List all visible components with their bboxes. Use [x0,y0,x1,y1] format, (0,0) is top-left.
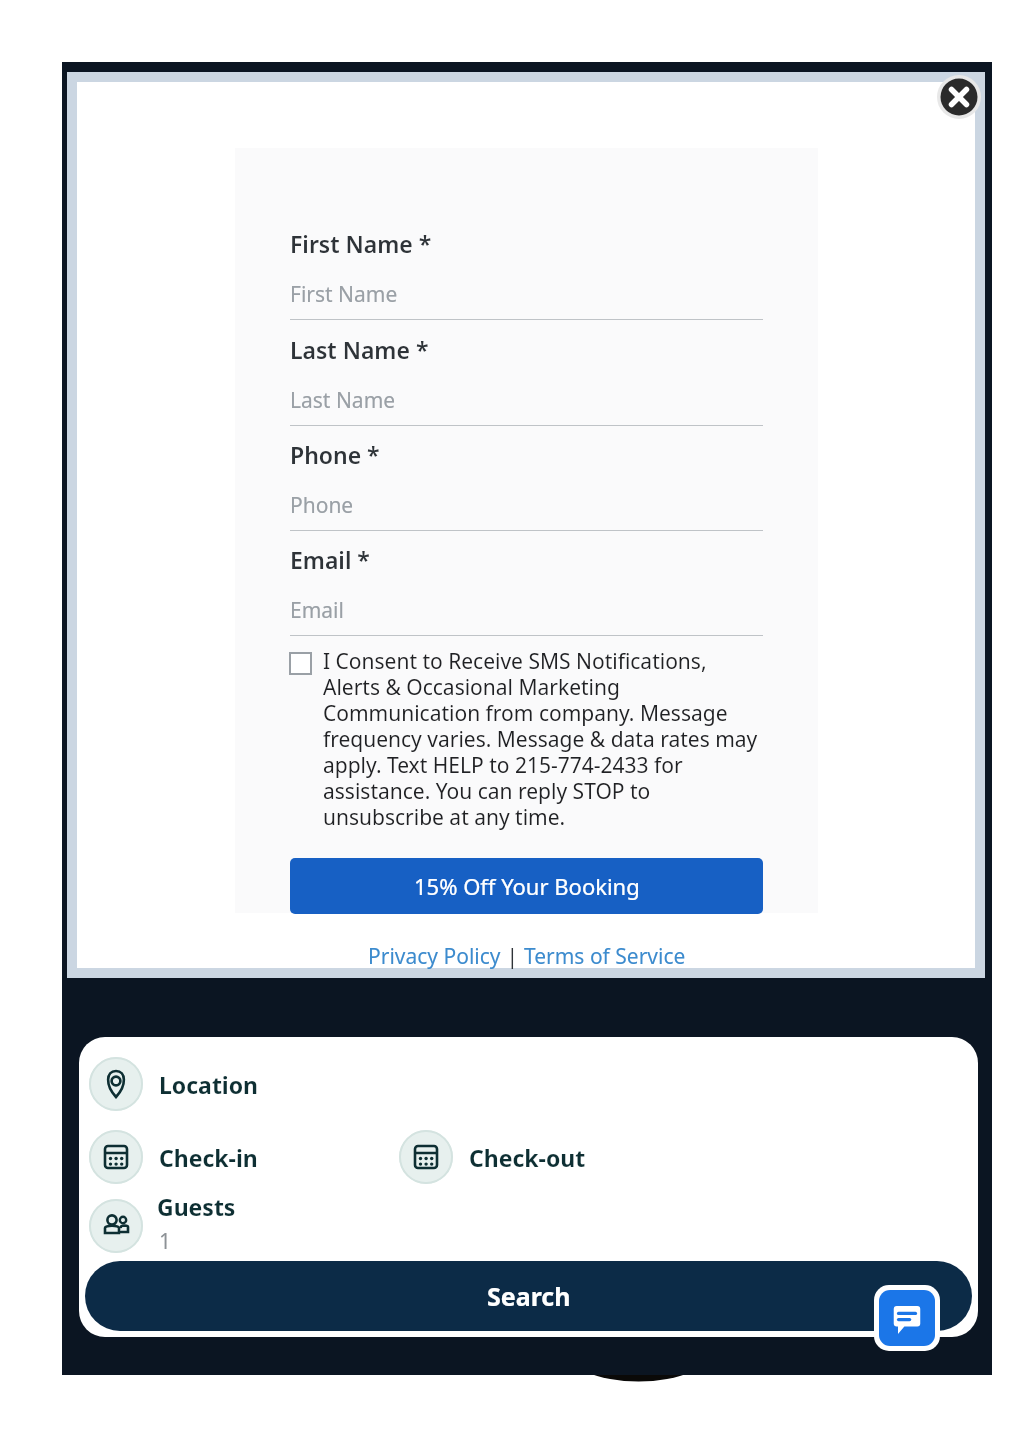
button[interactable]: Search [85,1261,972,1331]
button[interactable]: First Name * [77,82,975,968]
button[interactable]: 15% Off Your Booking [290,858,763,914]
staticText: Email [290,596,344,625]
button[interactable]: Check-out [395,1126,695,1188]
button[interactable]: Privacy Policy [368,942,501,971]
button[interactable]: Chat [879,1290,935,1346]
staticText: Last Name [290,386,396,415]
button[interactable]: Guests [85,1181,415,1253]
staticText: Email * [290,544,370,575]
staticText: Phone [290,491,354,520]
staticText: Location [159,1069,259,1100]
button[interactable]: Check-in [85,1126,385,1188]
staticText: Guests [157,1191,236,1222]
button[interactable]: First Name * [290,228,763,320]
staticText: First Name [290,280,398,309]
button[interactable]: Last Name * [290,334,763,426]
staticText: Phone * [290,439,380,470]
staticText: Last Name * [290,334,429,365]
button[interactable]: Close [937,75,981,119]
button[interactable]: I Consent to Receive SMS Notifications, … [290,647,763,832]
staticText: 1 [159,1227,172,1256]
staticText: I Consent to Receive SMS Notifications, … [323,647,763,832]
staticText: 15% Off Your Booking [414,871,640,901]
staticText: | [501,942,524,971]
staticText: Check-out [469,1142,586,1173]
staticText: Terms of Service [524,942,686,971]
button[interactable]: Terms of Service [524,942,686,971]
button[interactable]: Email * [290,544,763,636]
staticText: First Name * [290,228,432,259]
staticText: Privacy Policy [368,942,501,971]
button[interactable]: Location [85,1053,385,1115]
staticText: Search [487,1279,571,1313]
staticText: Check-in [159,1142,258,1173]
button[interactable]: Phone * [290,439,763,531]
